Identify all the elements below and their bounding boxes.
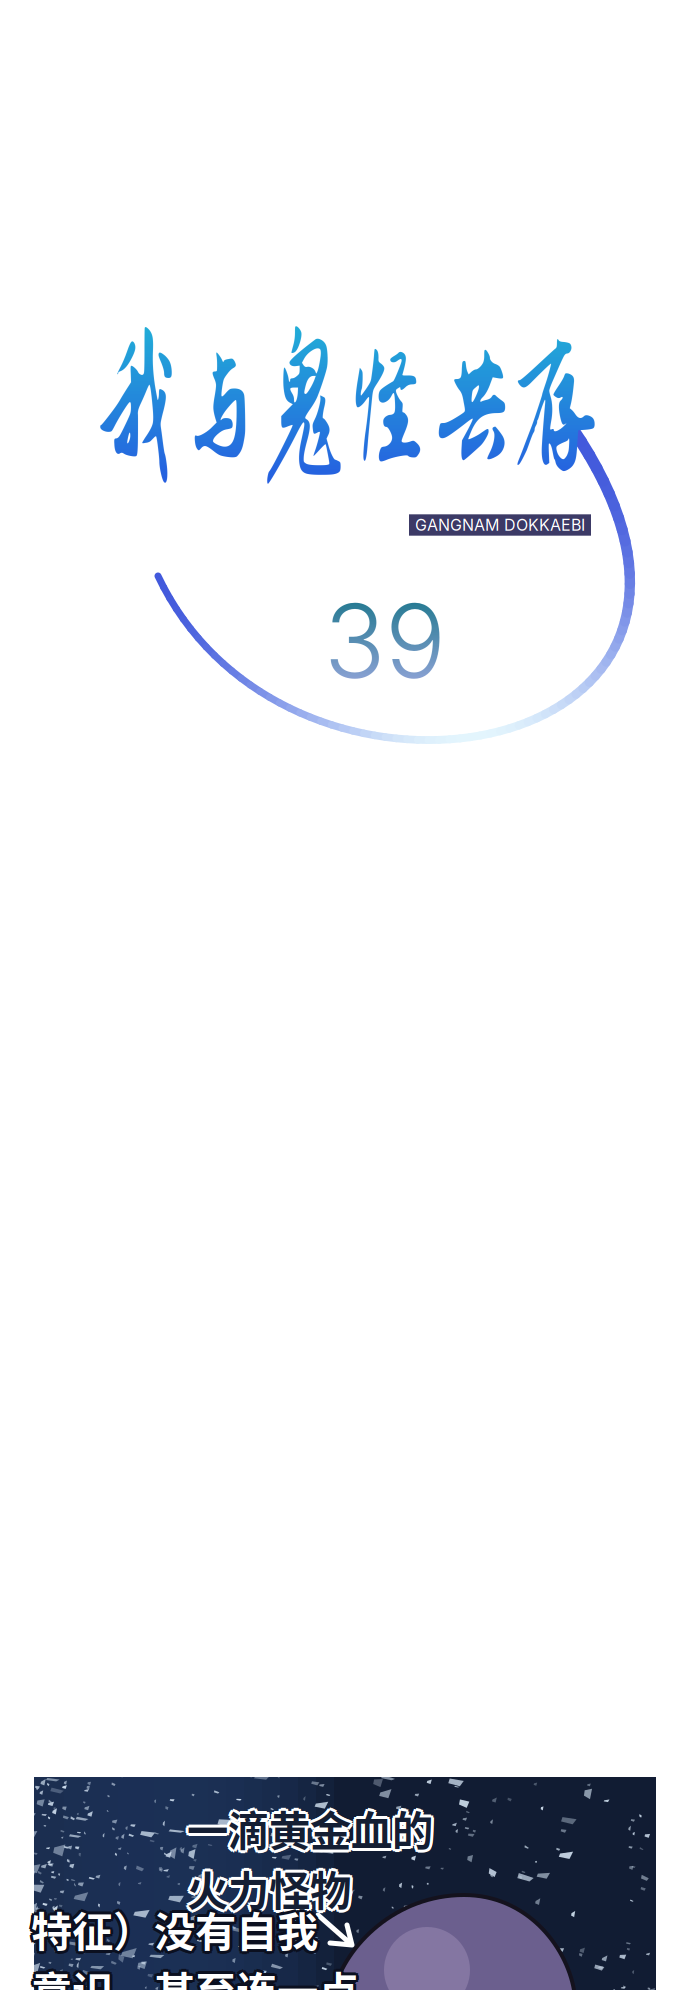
staticText: 一滴黄金血的 火力怪物 [185,1796,431,1916]
staticText: 一滴黄金血的 火力怪物 [189,1800,435,1920]
staticText: 特征）没有自我 意识，甚至连一点 [29,1897,357,1990]
staticText: 一滴黄金血的 火力怪物 [187,1798,433,1918]
staticText: 特征）没有自我 意识，甚至连一点 [29,1901,357,1990]
staticText: 一滴黄金血的 火力怪物 [190,1798,436,1918]
staticText: 特征）没有自我 意识，甚至连一点 [31,1899,359,1990]
staticText: 特征）没有自我 意识，甚至连一点 [34,1899,362,1990]
staticText: 一滴黄金血的 火力怪物 [187,1795,433,1915]
staticText: GANGNAM DOKKAEBI [415,515,585,535]
staticText: 特征）没有自我 意识，甚至连一点 [31,1902,359,1990]
staticText: 特征）没有自我 意识，甚至连一点 [31,1896,359,1990]
staticText: 特征）没有自我 意识，甚至连一点 [28,1899,356,1990]
staticText: 特征）没有自我 意识，甚至连一点 [33,1901,361,1990]
staticText: 一滴黄金血的 火力怪物 [185,1800,431,1920]
staticText: 特征）没有自我 意识，甚至连一点 [33,1897,361,1990]
staticText: 一滴黄金血的 火力怪物 [187,1801,433,1921]
staticText: 一滴黄金血的 火力怪物 [189,1796,435,1916]
staticText: 一滴黄金血的 火力怪物 [184,1798,430,1918]
